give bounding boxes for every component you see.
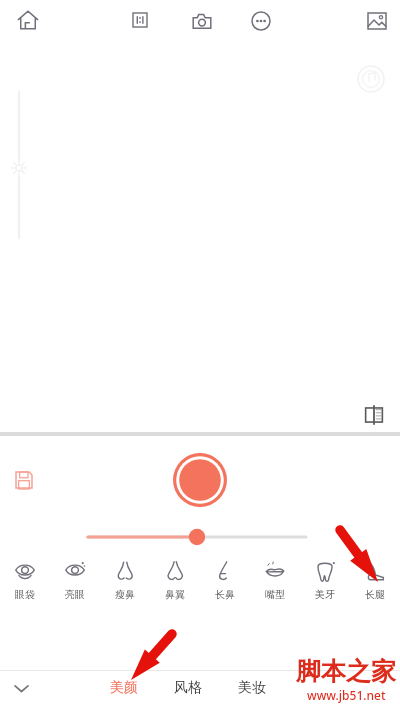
button[interactable]: Home — [12, 4, 44, 36]
staticText: 嘴型 — [265, 588, 285, 601]
button[interactable]: Aspect ratio 1 to 1 — [127, 7, 153, 33]
button[interactable]: 风格 — [168, 674, 208, 702]
staticText: 鼻翼 — [165, 588, 185, 601]
staticText: 长鼻 — [215, 588, 235, 601]
staticText: 美妆 — [238, 679, 266, 697]
button[interactable]: Collapse panel — [4, 671, 38, 705]
staticText: www.jb51.net — [307, 687, 386, 703]
button[interactable]: 长鼻 — [200, 560, 250, 601]
button[interactable]: 美颜 — [104, 674, 144, 702]
staticText: 美牙 — [315, 588, 335, 601]
staticText: 眼袋 — [15, 588, 35, 601]
button[interactable]: 美妆 — [232, 674, 272, 702]
button[interactable]: Save — [6, 462, 42, 498]
button[interactable]: 瘦鼻 — [100, 560, 150, 601]
button[interactable]: Compare before and after — [363, 404, 385, 426]
button[interactable]: 长腿 — [350, 560, 400, 601]
staticText: 风格 — [174, 679, 202, 697]
button[interactable]: More options — [246, 6, 276, 36]
button[interactable]: Switch camera — [187, 6, 217, 36]
button[interactable]: 亮眼 — [50, 560, 100, 601]
staticText: 脚本之家 — [296, 656, 396, 687]
staticText: 瘦鼻 — [115, 588, 135, 601]
button[interactable]: 嘴型 — [250, 560, 300, 601]
button[interactable]: Music — [357, 65, 385, 93]
button[interactable]: 美牙 — [300, 560, 350, 601]
staticText: 长腿 — [365, 588, 385, 601]
staticText: 亮眼 — [65, 588, 85, 601]
button[interactable]: 鼻翼 — [150, 560, 200, 601]
button[interactable]: Shutter — [173, 453, 227, 507]
button[interactable]: 眼袋 — [0, 560, 50, 601]
button[interactable]: Gallery — [362, 6, 392, 36]
staticText: 美颜 — [110, 679, 138, 697]
